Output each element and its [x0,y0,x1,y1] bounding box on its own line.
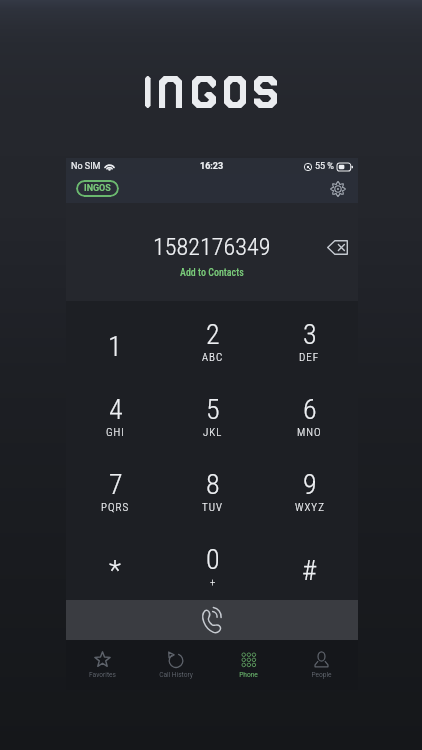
button[interactable]: 0 [164,525,261,600]
staticText: DEF [299,351,320,364]
button[interactable]: Add to Contacts [176,266,248,280]
button[interactable]: Favorites [66,640,139,690]
staticText: TUV [202,501,223,514]
button[interactable]: People [285,640,358,690]
staticText: Call History [159,671,193,679]
staticText: 8 [206,468,220,501]
button[interactable]: INGOS [76,180,119,197]
button[interactable]: 7 [66,450,164,525]
button[interactable]: 6 [261,375,358,450]
staticText: 55 % [315,161,334,172]
staticText: Favorites [89,671,116,679]
staticText: 6 [303,393,317,426]
staticText: PQRS [101,501,130,514]
staticText: 4 [109,393,123,426]
button[interactable]: Call History [139,640,212,690]
staticText: 9 [303,468,317,501]
staticText: People [311,671,332,679]
staticText: 1 [108,330,122,363]
button[interactable]: Settings [327,178,349,200]
staticText: * [109,554,121,587]
button[interactable]: 3 [261,301,358,375]
button[interactable]: # [261,525,358,600]
staticText: # [302,554,317,587]
staticText: INGOS [84,183,111,194]
staticText: ABC [202,351,224,364]
button[interactable]: Phone [212,640,285,690]
button[interactable]: 1 [66,301,164,375]
staticText: + [210,576,217,589]
staticText: 7 [109,468,123,501]
button[interactable]: * [66,525,164,600]
button[interactable]: 8 [164,450,261,525]
staticText: Phone [239,671,258,679]
button[interactable]: 5 [164,375,261,450]
button[interactable]: Backspace [322,232,352,262]
staticText: 5 [206,393,220,426]
staticText: GHI [106,426,125,439]
staticText: WXYZ [295,501,325,514]
staticText: 3 [303,318,317,351]
button[interactable]: 4 [66,375,164,450]
button[interactable]: Call [66,600,358,640]
staticText: 1582176349 [153,233,271,261]
staticText: Add to Contacts [180,267,244,279]
button[interactable]: 9 [261,450,358,525]
staticText: JKL [203,426,223,439]
staticText: 16:23 [200,161,224,172]
staticText: 0 [206,543,220,576]
button[interactable]: 2 [164,301,261,375]
staticText: No SIM [71,161,101,172]
staticText: MNO [297,426,322,439]
staticText: 2 [206,318,220,351]
